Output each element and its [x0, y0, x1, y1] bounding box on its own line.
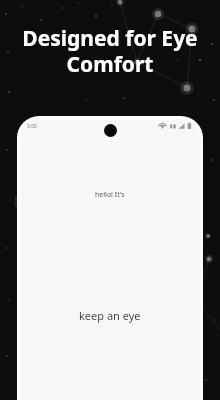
other: Front camera — [104, 124, 117, 137]
button[interactable]: 3:00 — [20, 119, 200, 400]
staticText: Designed for Eye Comfort — [8, 24, 212, 79]
staticText: hello! It's — [95, 190, 125, 200]
staticText: 3:00 — [27, 123, 37, 130]
staticText: keep an eye — [79, 308, 141, 323]
